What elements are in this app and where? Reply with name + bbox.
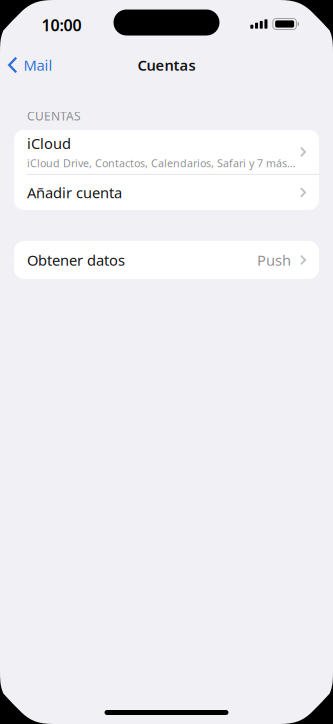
staticText: Cuentas xyxy=(137,55,195,75)
staticText: Mail xyxy=(23,55,52,75)
staticText: iCloud xyxy=(27,134,71,153)
staticText: iCloud Drive, Contactos, Calendarios, Sa… xyxy=(27,156,295,170)
button[interactable]: iCloud xyxy=(14,130,319,174)
button[interactable]: Obtener datos xyxy=(14,241,319,279)
button[interactable]: Añadir cuenta xyxy=(14,175,319,210)
staticText: Obtener datos xyxy=(27,250,125,270)
staticText: Añadir cuenta xyxy=(27,183,122,202)
button[interactable]: Mail xyxy=(0,50,60,80)
staticText: 10:00 xyxy=(41,14,81,36)
staticText: CUENTAS xyxy=(27,108,81,124)
staticText: Push xyxy=(257,250,291,270)
